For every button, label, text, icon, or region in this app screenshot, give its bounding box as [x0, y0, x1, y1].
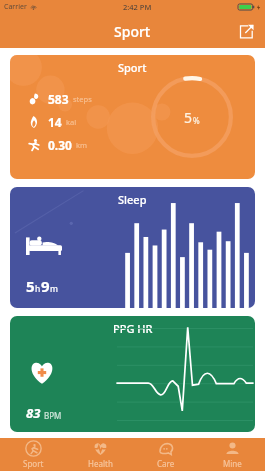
- button[interactable]: Sport: [10, 55, 255, 179]
- staticText: %: [193, 115, 200, 126]
- button[interactable]: Sleep: [10, 187, 255, 308]
- button[interactable]: Health: [67, 438, 133, 471]
- staticText: Sport: [118, 60, 147, 75]
- staticText: 14: [48, 114, 62, 130]
- staticText: Carrier: [4, 2, 27, 12]
- staticText: 583: [48, 91, 69, 107]
- staticText: Sport: [114, 22, 151, 41]
- staticText: m: [50, 283, 58, 295]
- staticText: Care: [157, 458, 175, 469]
- staticText: 83: [26, 404, 41, 422]
- button[interactable]: Sport: [0, 438, 67, 471]
- staticText: steps: [73, 94, 92, 104]
- staticText: km: [76, 140, 88, 150]
- staticText: BPM: [44, 410, 62, 421]
- button[interactable]: Share: [233, 18, 259, 44]
- staticText: 5: [26, 276, 35, 296]
- staticText: Sport: [23, 458, 44, 469]
- staticText: Sleep: [118, 192, 147, 207]
- staticText: kal: [66, 117, 77, 127]
- staticText: 0.30: [48, 137, 72, 153]
- staticText: Health: [88, 458, 113, 469]
- staticText: 2:42 PM: [123, 2, 152, 12]
- staticText: h: [35, 283, 41, 295]
- button[interactable]: Mine: [199, 438, 265, 471]
- staticText: PPG HR: [113, 321, 153, 336]
- staticText: 9: [41, 276, 50, 296]
- staticText: Mine: [223, 458, 242, 469]
- button[interactable]: PPG HR: [10, 316, 255, 432]
- button[interactable]: Care: [133, 438, 199, 471]
- staticText: 5: [184, 108, 193, 127]
